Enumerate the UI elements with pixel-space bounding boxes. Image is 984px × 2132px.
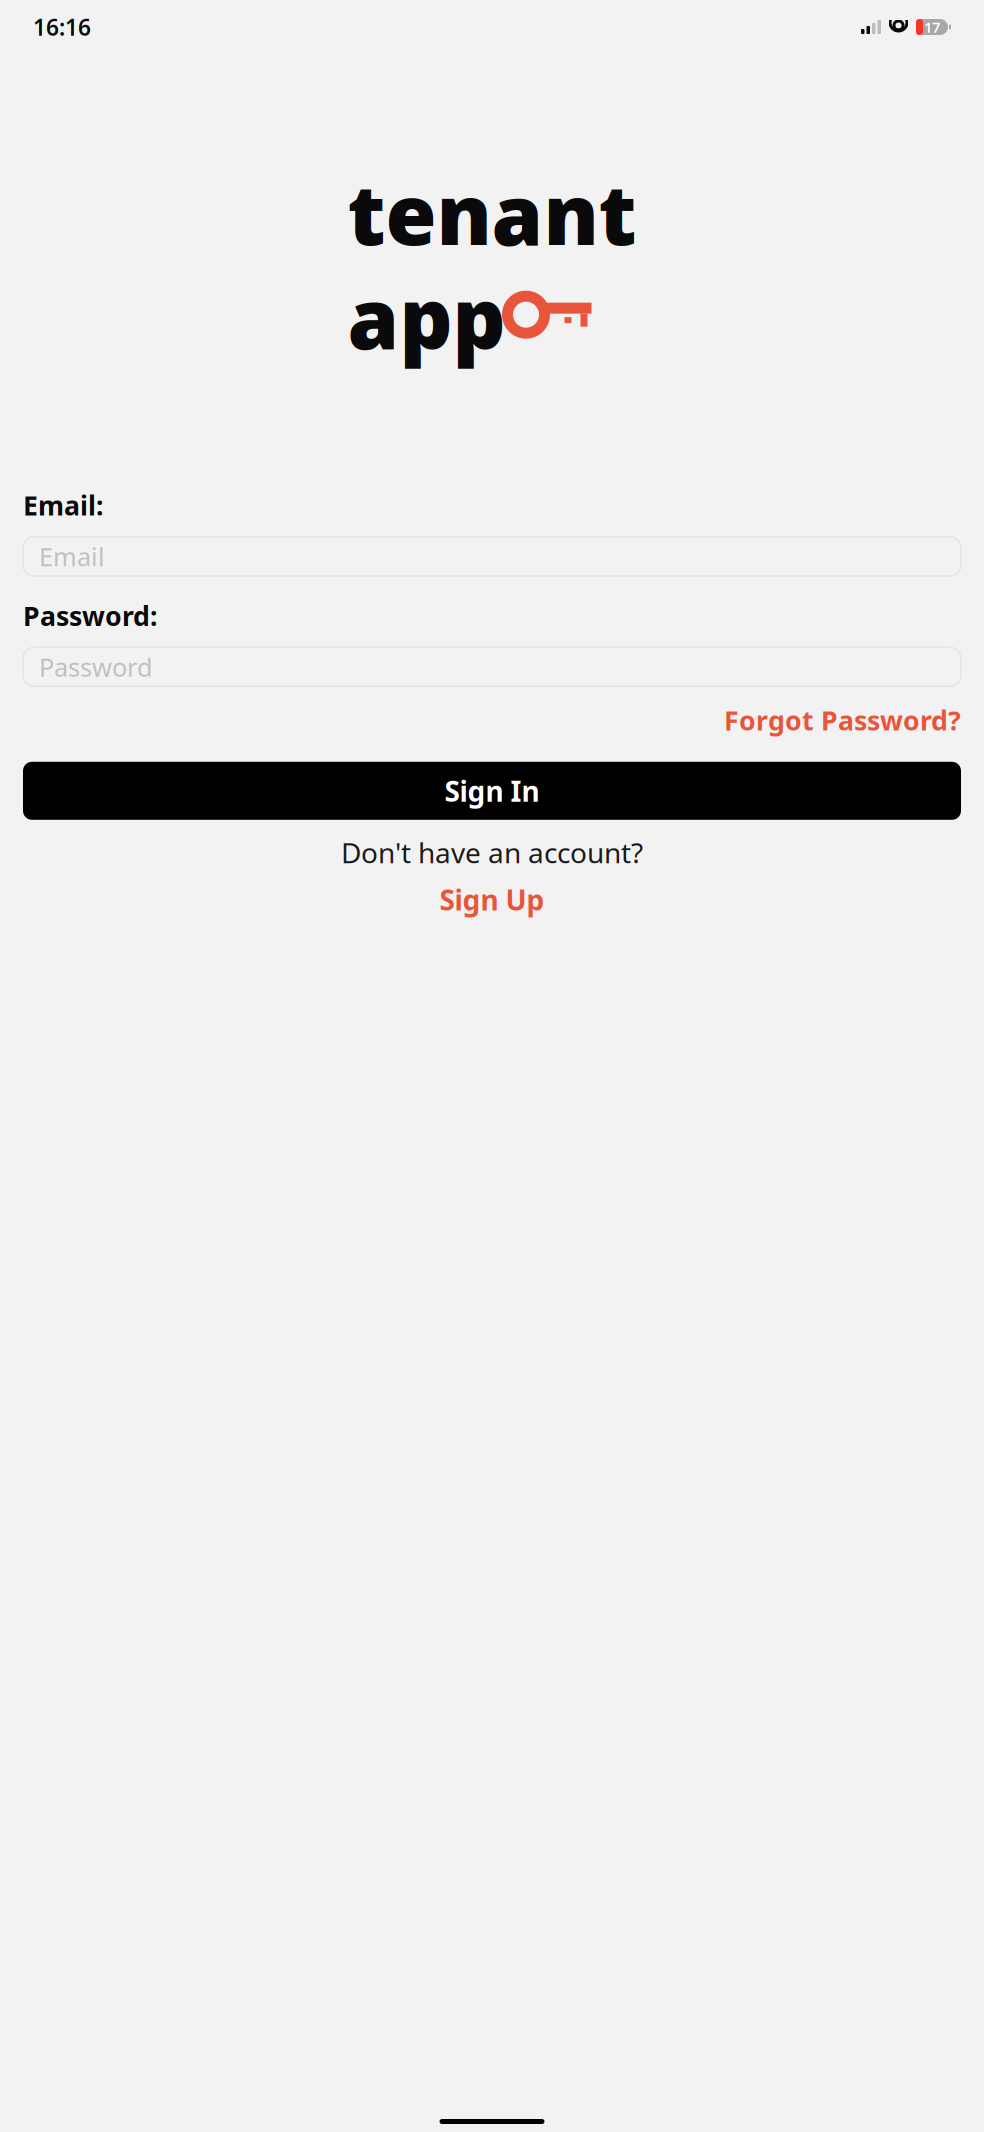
button[interactable]: Password [23, 647, 961, 686]
staticText: app [347, 262, 505, 372]
staticText: Forgot Password? [724, 702, 961, 738]
button[interactable]: Forgot Password? [724, 698, 961, 742]
button[interactable]: Sign Up [429, 879, 554, 920]
staticText: Password [39, 650, 153, 684]
button[interactable]: Sign In [23, 762, 961, 820]
staticText: Email [39, 540, 105, 573]
staticText: 17 [924, 17, 940, 37]
staticText: Don't have an account? [341, 834, 643, 871]
staticText: 16:16 [33, 12, 91, 42]
staticText: Sign In [444, 772, 539, 809]
staticText: tenant [347, 158, 636, 268]
button[interactable]: Email [23, 537, 961, 576]
staticText: Password: [23, 598, 157, 633]
staticText: Sign Up [439, 881, 544, 918]
staticText: Email: [23, 488, 103, 523]
